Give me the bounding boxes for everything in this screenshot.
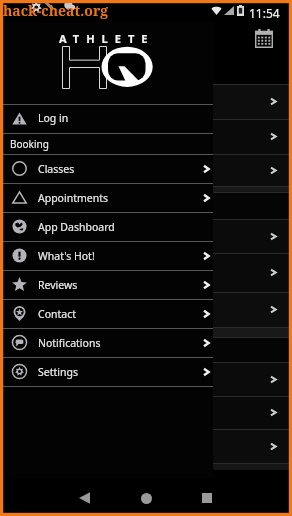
staticText: 11:54 <box>249 5 280 21</box>
button[interactable] <box>3 327 289 338</box>
button[interactable] <box>3 429 289 464</box>
button[interactable] <box>3 337 289 362</box>
staticText: Settings <box>38 365 78 379</box>
button[interactable] <box>3 463 289 470</box>
staticText: Notifications <box>38 336 101 350</box>
button[interactable]: Calendar <box>255 29 273 48</box>
staticText: ATHLETE <box>59 31 155 46</box>
button[interactable] <box>3 362 289 397</box>
staticText: Reviews <box>38 278 78 292</box>
staticText: Classes <box>38 162 75 176</box>
button[interactable] <box>3 253 289 292</box>
button[interactable]: What's Hot! <box>3 241 213 270</box>
button[interactable]: Notifications <box>3 328 213 357</box>
staticText: What's Hot! <box>38 249 95 263</box>
button[interactable]: Settings <box>3 357 213 386</box>
staticText: hack-cheat.org <box>3 1 109 20</box>
button[interactable] <box>3 219 289 253</box>
button[interactable]: Reviews <box>3 270 213 299</box>
button[interactable]: App Dashboard <box>3 212 213 241</box>
staticText: Booking <box>10 137 49 151</box>
button[interactable] <box>3 292 289 327</box>
staticText: App Dashboard <box>38 220 115 234</box>
button[interactable]: Appointments <box>3 183 213 212</box>
staticText: Appointments <box>38 191 109 205</box>
button[interactable]: Recents <box>191 482 223 514</box>
button[interactable]: Home <box>130 482 162 514</box>
button[interactable] <box>3 119 289 154</box>
button[interactable] <box>3 154 289 186</box>
button[interactable]: Back <box>68 482 100 514</box>
button[interactable] <box>3 192 289 220</box>
button[interactable] <box>3 186 289 192</box>
staticText: Log in <box>38 111 69 125</box>
button[interactable]: Log in <box>3 104 213 132</box>
staticText: Contact <box>38 307 76 321</box>
button[interactable]: Classes <box>3 154 213 183</box>
button[interactable] <box>3 396 289 429</box>
button[interactable] <box>3 84 289 119</box>
button[interactable]: Contact <box>3 299 213 328</box>
